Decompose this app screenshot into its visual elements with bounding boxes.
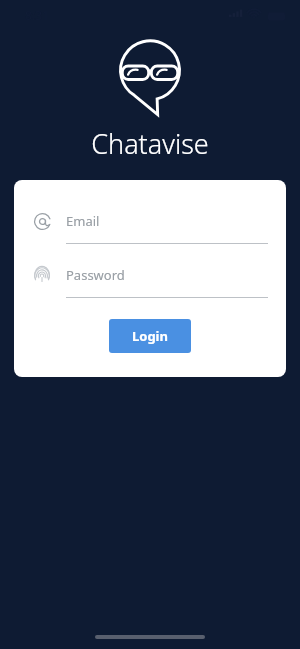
other: Password <box>32 265 52 285</box>
other: Email <box>32 211 52 231</box>
staticText: Email <box>66 212 100 230</box>
button[interactable]: Email <box>32 211 268 244</box>
staticText: Chatavise <box>91 125 209 162</box>
button[interactable]: Password <box>32 265 268 298</box>
staticText: Login <box>132 327 168 345</box>
button[interactable]: Login <box>109 319 191 353</box>
staticText: Password <box>66 266 125 284</box>
